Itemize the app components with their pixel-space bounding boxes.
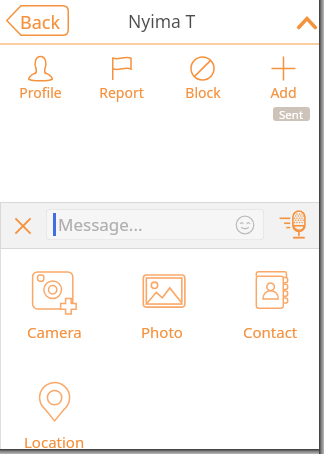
staticText: Block (185, 83, 221, 102)
button[interactable]: Add (243, 45, 324, 102)
button[interactable]: Voice message (279, 209, 306, 240)
staticText: Location (24, 432, 85, 452)
button[interactable]: Location (0, 359, 108, 452)
staticText: Photo (141, 322, 183, 342)
staticText: Contact (243, 322, 298, 342)
button[interactable]: Block (162, 45, 243, 102)
button[interactable]: Back (6, 5, 69, 36)
button[interactable]: Message... (46, 209, 264, 240)
button[interactable]: Collapse (291, 7, 323, 39)
button[interactable]: Photo (108, 249, 216, 342)
button[interactable]: Report (81, 45, 162, 102)
button[interactable]: Close (9, 212, 37, 240)
button[interactable]: Contact (216, 249, 324, 342)
button[interactable]: Profile (0, 45, 81, 102)
button[interactable]: Emoji (234, 214, 256, 236)
staticText: Add (270, 83, 297, 102)
staticText: Profile (19, 83, 62, 102)
staticText: Back (20, 10, 61, 35)
staticText: Message... (58, 213, 143, 236)
staticText: Camera (27, 322, 82, 342)
staticText: Nyima T (128, 9, 196, 33)
staticText: Report (99, 83, 144, 102)
button[interactable]: Camera (0, 249, 108, 342)
staticText: Sent (279, 107, 304, 121)
